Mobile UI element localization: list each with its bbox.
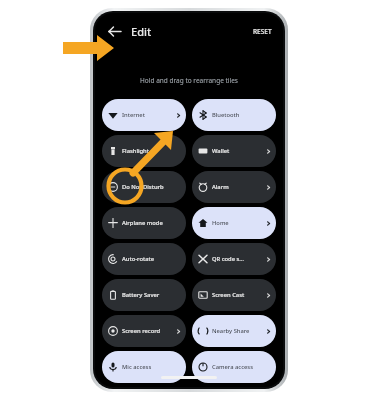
button[interactable]: Auto-rotate (102, 243, 186, 275)
staticText: Alarm (212, 183, 229, 191)
staticText: Bluetooth (212, 111, 240, 119)
staticText: Screen Cast (212, 291, 245, 299)
staticText: Hold and drag to rearrange tiles (140, 76, 238, 85)
button[interactable]: Battery Saver (102, 279, 186, 311)
staticText: Home (212, 219, 229, 227)
button[interactable]: Nearby Share (192, 315, 276, 347)
staticText: Auto-rotate (122, 255, 155, 263)
button[interactable]: Back (103, 20, 125, 42)
staticText: Edit (131, 24, 152, 39)
staticText: Camera access (212, 363, 253, 371)
staticText: Battery Saver (122, 291, 160, 299)
button[interactable]: Mic access (102, 351, 186, 383)
staticText: Nearby Share (212, 327, 250, 335)
button[interactable]: Screen record (102, 315, 186, 347)
staticText: Do Not Disturb (122, 183, 164, 191)
button[interactable]: Bluetooth (192, 99, 276, 131)
button[interactable]: Camera access (192, 351, 276, 383)
staticText: Screen record (122, 327, 161, 335)
button[interactable]: Alarm (192, 171, 276, 203)
staticText: Wallet (212, 147, 230, 155)
button[interactable]: Flashlight (102, 135, 186, 167)
button[interactable]: Home (192, 207, 276, 239)
button[interactable]: QR code s… (192, 243, 276, 275)
staticText: Airplane mode (122, 219, 163, 227)
button[interactable]: Wallet (192, 135, 276, 167)
staticText: Internet (122, 111, 145, 119)
button[interactable]: Internet (102, 99, 186, 131)
staticText: QR code s… (212, 255, 245, 263)
staticText: Flashlight (122, 147, 149, 155)
button[interactable]: Screen Cast (192, 279, 276, 311)
button[interactable]: Do Not Disturb (102, 171, 186, 203)
staticText: RESET (253, 27, 272, 36)
button[interactable]: Airplane mode (102, 207, 186, 239)
button[interactable]: RESET (250, 25, 275, 38)
staticText: Mic access (122, 363, 152, 371)
